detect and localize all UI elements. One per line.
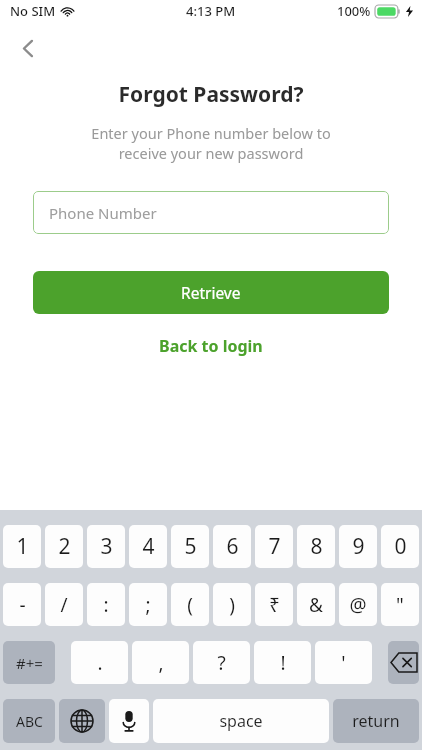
button[interactable]: 0 (381, 525, 419, 568)
staticText: 7 (268, 532, 281, 561)
staticText: 4:13 PM (186, 2, 236, 20)
staticText: " (396, 592, 404, 618)
staticText: ₹ (269, 592, 280, 618)
staticText: Enter your Phone number below to receive… (0, 123, 422, 164)
button[interactable]: . (71, 641, 128, 684)
staticText: 2 (58, 532, 71, 561)
button[interactable]: 1 (3, 525, 41, 568)
staticText: 8 (310, 532, 323, 561)
staticText: ! (280, 650, 286, 676)
staticText: Forgot Password? (0, 80, 422, 109)
staticText: ) (229, 592, 235, 618)
staticText: No SIM (10, 2, 56, 20)
button[interactable]: , (132, 641, 189, 684)
button[interactable]: Change keyboard language (59, 699, 105, 743)
button[interactable]: : (87, 583, 125, 626)
staticText: ? (217, 650, 226, 676)
staticText: , (158, 650, 164, 676)
button[interactable]: " (381, 583, 419, 626)
staticText: & (309, 592, 323, 618)
staticText: 6 (226, 532, 239, 561)
staticText: ( (187, 592, 193, 618)
button[interactable]: Back to login (145, 329, 277, 363)
button[interactable]: ₹ (255, 583, 293, 626)
button[interactable]: - (3, 583, 41, 626)
staticText: @ (349, 592, 367, 618)
staticText: 9 (352, 532, 365, 561)
button[interactable]: ) (213, 583, 251, 626)
staticText: space (219, 710, 263, 732)
button[interactable]: ? (193, 641, 250, 684)
staticText: / (60, 592, 68, 618)
button[interactable]: 7 (255, 525, 293, 568)
staticText: ABC (16, 712, 43, 731)
staticText: 4 (142, 532, 155, 561)
button[interactable]: Retrieve (33, 271, 389, 314)
button[interactable]: Voice input (109, 699, 149, 743)
button[interactable]: ABC (3, 699, 55, 743)
button[interactable]: space (153, 699, 329, 743)
button[interactable]: Backspace (388, 641, 419, 684)
staticText: . (97, 650, 103, 676)
button[interactable]: 4 (129, 525, 167, 568)
staticText: : (103, 592, 109, 618)
staticText: Phone Number (49, 203, 157, 223)
staticText: 1 (16, 532, 29, 561)
button[interactable]: @ (339, 583, 377, 626)
button[interactable]: Back (6, 26, 50, 70)
button[interactable]: 3 (87, 525, 125, 568)
staticText: 5 (184, 532, 197, 561)
button[interactable]: ! (254, 641, 311, 684)
button[interactable]: return (333, 699, 419, 743)
staticText: #+= (16, 653, 43, 673)
button[interactable]: ' (315, 641, 372, 684)
staticText: 100% (337, 2, 371, 20)
staticText: 3 (100, 532, 113, 561)
button[interactable]: 9 (339, 525, 377, 568)
button[interactable]: 5 (171, 525, 209, 568)
staticText: return (352, 710, 400, 732)
staticText: 0 (394, 532, 407, 561)
staticText: - (19, 592, 26, 618)
staticText: ; (145, 592, 151, 618)
button[interactable]: ; (129, 583, 167, 626)
button[interactable]: 8 (297, 525, 335, 568)
button[interactable]: 6 (213, 525, 251, 568)
button[interactable]: #+= (3, 641, 55, 684)
button[interactable]: ( (171, 583, 209, 626)
staticText: Retrieve (181, 282, 241, 303)
staticText: ' (341, 650, 346, 676)
staticText: Back to login (159, 335, 263, 357)
button[interactable]: Phone Number (33, 191, 389, 234)
button[interactable]: 2 (45, 525, 83, 568)
button[interactable]: & (297, 583, 335, 626)
button[interactable]: / (45, 583, 83, 626)
